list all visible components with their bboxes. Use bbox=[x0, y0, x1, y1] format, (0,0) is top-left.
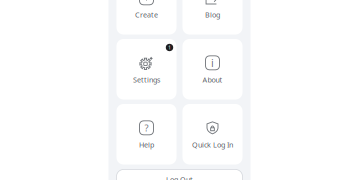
staticText: Quick Log In bbox=[192, 140, 233, 150]
staticText: Log Out bbox=[166, 175, 193, 180]
button[interactable]: Blog bbox=[182, 0, 242, 34]
staticText: Help bbox=[139, 140, 154, 150]
button[interactable]: i bbox=[182, 39, 242, 99]
button[interactable]: ? bbox=[116, 104, 176, 164]
button[interactable]: Quick Log In bbox=[182, 104, 242, 164]
staticText: i bbox=[211, 56, 214, 70]
staticText: Blog bbox=[205, 10, 220, 20]
button[interactable]: Log Out bbox=[116, 169, 242, 180]
button[interactable]: Settings bbox=[116, 39, 176, 99]
button[interactable]: Create bbox=[116, 0, 176, 34]
staticText: Create bbox=[135, 10, 158, 20]
staticText: 1 bbox=[168, 44, 171, 51]
staticText: About bbox=[202, 75, 222, 85]
staticText: Settings bbox=[133, 75, 160, 85]
staticText: ? bbox=[144, 122, 148, 134]
